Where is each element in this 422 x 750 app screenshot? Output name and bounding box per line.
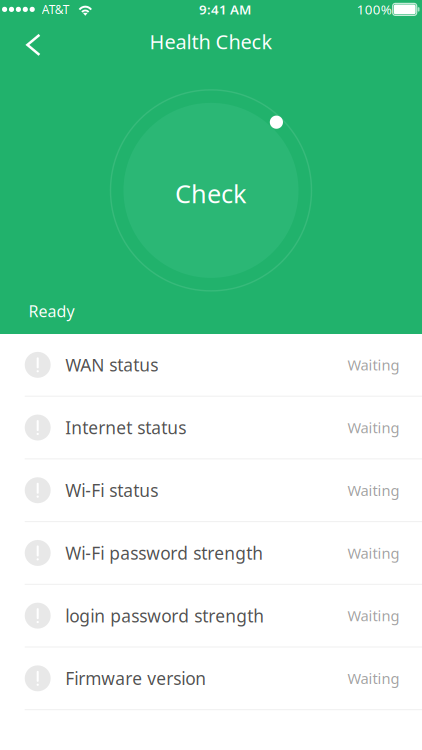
button[interactable]: Wi-Fi status (0, 459, 422, 521)
staticText: AT&T (42, 1, 70, 17)
staticText: Waiting (347, 606, 399, 625)
button[interactable]: Firmware version (0, 647, 422, 709)
button[interactable]: WAN status (0, 334, 422, 396)
staticText: Ready (28, 300, 74, 322)
staticText: Waiting (347, 418, 399, 437)
staticText: 9:41 AM (199, 0, 251, 18)
staticText: login password strength (65, 604, 264, 627)
staticText: 100% (357, 0, 392, 18)
staticText: Waiting (347, 355, 399, 375)
staticText: Waiting (347, 543, 399, 563)
staticText: Internet status (65, 416, 186, 439)
staticText: Health Check (149, 28, 272, 55)
staticText: Wi-Fi status (65, 479, 158, 502)
button[interactable]: Internet status (0, 397, 422, 458)
button[interactable]: Wi-Fi password strength (0, 522, 422, 584)
button[interactable]: Back (0, 19, 57, 63)
staticText: Waiting (347, 669, 399, 688)
staticText: Wi-Fi password strength (65, 541, 263, 564)
staticText: Check (175, 177, 247, 210)
staticText: Firmware version (65, 667, 206, 690)
staticText: Waiting (347, 480, 399, 500)
button[interactable]: login password strength (0, 585, 422, 646)
staticText: WAN status (65, 353, 158, 376)
button[interactable]: Check (109, 88, 313, 292)
